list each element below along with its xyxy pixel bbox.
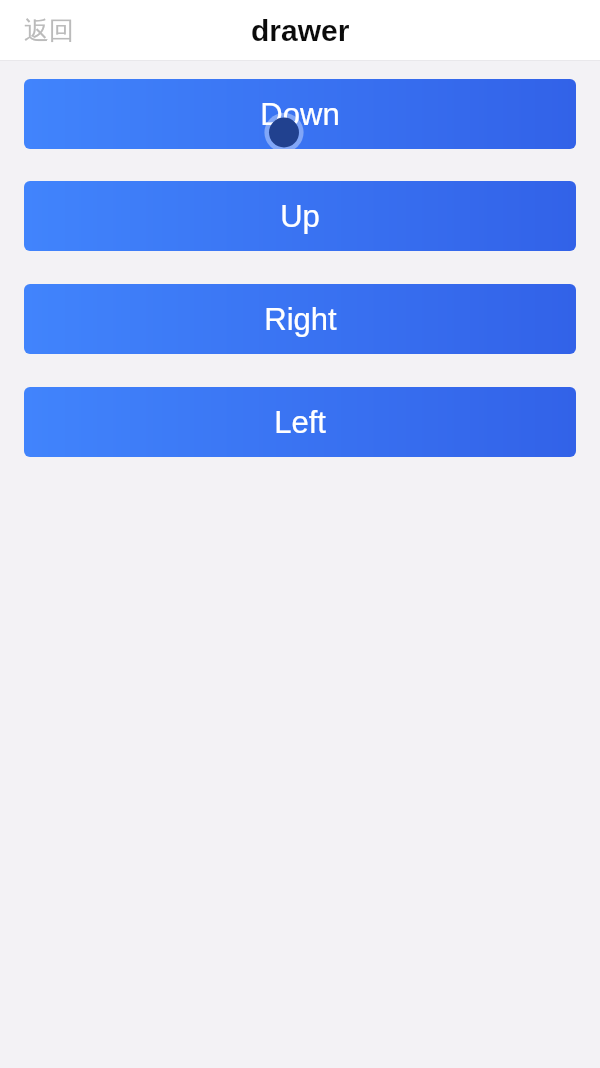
staticText: Up [280,199,320,234]
staticText: Left [274,405,326,440]
staticText: Right [264,302,337,337]
button[interactable]: Down [24,79,576,149]
staticText: drawer [251,14,350,48]
button[interactable]: 返回 [0,0,98,61]
staticText: Down [260,97,340,132]
button[interactable]: Left [24,387,576,457]
staticText: 返回 [24,15,74,46]
button[interactable]: Right [24,284,576,354]
button[interactable]: Up [24,181,576,251]
